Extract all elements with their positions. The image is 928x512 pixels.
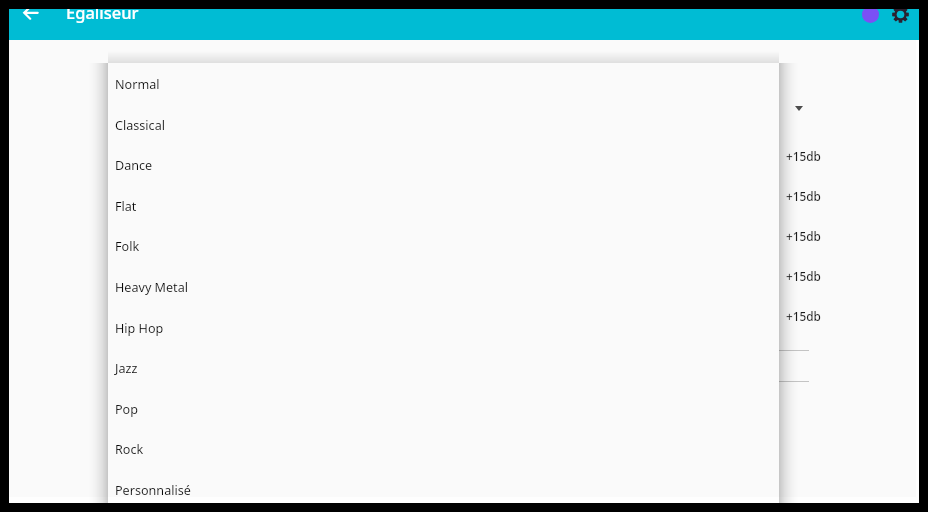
staticText: Flat: [115, 198, 137, 215]
button[interactable]: Dance: [108, 145, 779, 185]
staticText: +15db: [786, 148, 821, 164]
staticText: Normal: [115, 76, 160, 93]
button[interactable]: Jazz: [108, 348, 779, 388]
staticText: Pop: [115, 401, 138, 418]
staticText: Personnalisé: [115, 482, 191, 499]
staticText: Dance: [115, 157, 153, 174]
button[interactable]: Flat: [108, 186, 779, 226]
staticText: Heavy Metal: [115, 279, 188, 296]
button[interactable]: Heavy Metal: [108, 267, 779, 307]
button[interactable]: Hip Hop: [108, 308, 779, 348]
staticText: +15db: [786, 188, 821, 204]
button[interactable]: Classical: [108, 105, 779, 145]
button[interactable]: Settings: [886, 9, 914, 28]
staticText: Egaliseur: [66, 9, 139, 23]
staticText: +15db: [786, 268, 821, 284]
button[interactable]: Folk: [108, 226, 779, 266]
staticText: +15db: [786, 228, 821, 244]
staticText: +15db: [786, 308, 821, 324]
staticText: Jazz: [115, 360, 138, 377]
button[interactable]: Personnalisé: [108, 470, 779, 503]
button[interactable]: Pop: [108, 389, 779, 429]
staticText: Hip Hop: [115, 320, 164, 337]
staticText: Folk: [115, 238, 140, 255]
staticText: Classical: [115, 117, 165, 134]
button[interactable]: Back: [16, 9, 48, 28]
staticText: Rock: [115, 441, 144, 458]
button[interactable]: Rock: [108, 429, 779, 469]
button[interactable]: Normal: [108, 64, 779, 104]
